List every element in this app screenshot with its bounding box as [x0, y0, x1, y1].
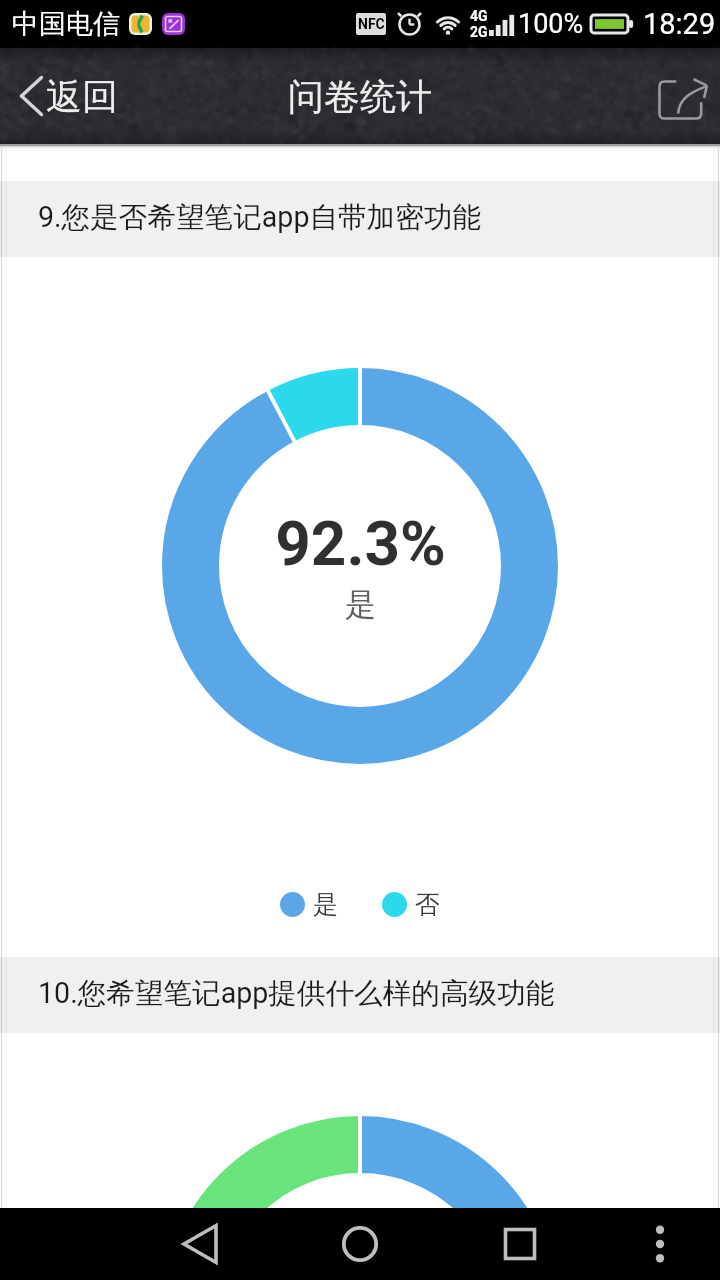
button[interactable]: 10.您希望笔记app提供什么样的高级功能	[0, 957, 720, 1033]
staticText: NFC	[358, 16, 385, 32]
staticText: 否	[415, 889, 440, 920]
button[interactable]: Home	[324, 1208, 396, 1280]
button[interactable]: Menu	[624, 1208, 696, 1280]
button[interactable]: 是	[280, 889, 338, 920]
staticText: 4G	[470, 8, 488, 24]
staticText: 92.3%	[275, 507, 446, 580]
staticText: 18:29	[643, 7, 716, 41]
staticText: 是	[313, 889, 338, 920]
button[interactable]: Recents	[484, 1208, 556, 1280]
staticText: 返回	[46, 74, 118, 119]
staticText: 是	[345, 585, 376, 624]
staticText: 9.您是否希望笔记app自带加密功能	[38, 199, 481, 235]
button[interactable]: 9.您是否希望笔记app自带加密功能	[0, 181, 720, 257]
button[interactable]: Share	[644, 48, 720, 144]
staticText: 2G	[470, 24, 488, 40]
staticText: 10.您希望笔记app提供什么样的高级功能	[38, 975, 555, 1011]
staticText: 中国电信	[12, 7, 120, 41]
button[interactable]: Back	[164, 1208, 236, 1280]
staticText: 问卷统计	[288, 74, 432, 119]
staticText: 100%	[518, 8, 584, 40]
button[interactable]: 否	[382, 889, 440, 920]
button[interactable]: 返回	[20, 48, 118, 144]
